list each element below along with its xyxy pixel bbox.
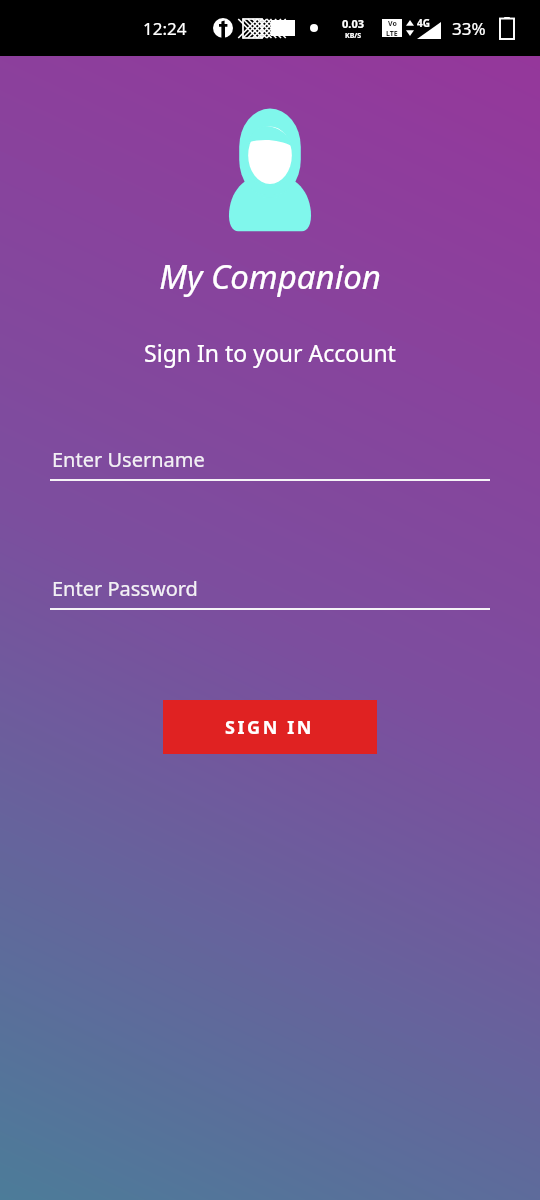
staticText: 0.03 [342,16,364,31]
staticText: 33% [452,17,486,40]
staticText: Sign In to your Account [144,337,396,368]
button[interactable]: Enter Username [50,446,490,481]
staticText: Enter Password [52,575,198,602]
staticText: 4G [417,16,430,30]
other: Profile avatar [214,104,326,232]
staticText: Enter Username [52,446,205,473]
button[interactable]: SIGN IN [163,700,377,754]
staticText: 12:24 [143,17,187,40]
staticText: Vo [388,19,397,29]
staticText: LTE [386,29,398,37]
staticText: KB/S [345,31,362,41]
staticText: SIGN IN [225,715,315,740]
staticText: My Companion [159,254,381,299]
button[interactable]: Enter Password [50,575,490,610]
